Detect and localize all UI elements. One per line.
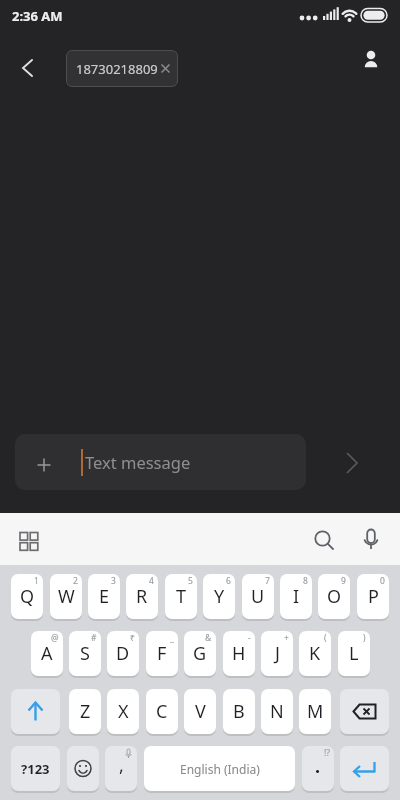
button[interactable]: W bbox=[50, 574, 82, 619]
button[interactable] bbox=[337, 448, 367, 478]
button[interactable]: , bbox=[105, 746, 137, 791]
button[interactable]: English (India) bbox=[144, 746, 295, 791]
button[interactable]: E bbox=[88, 574, 120, 619]
button[interactable]: A bbox=[31, 631, 63, 676]
staticText: # bbox=[91, 632, 97, 644]
button[interactable] bbox=[67, 746, 99, 791]
button[interactable] bbox=[356, 48, 386, 78]
staticText: M bbox=[307, 699, 324, 724]
button[interactable]: V bbox=[184, 689, 216, 734]
staticText: ( bbox=[324, 632, 327, 644]
button[interactable]: X bbox=[107, 689, 139, 734]
staticText: B bbox=[233, 699, 245, 724]
staticText: 0 bbox=[380, 575, 385, 587]
staticText: D bbox=[116, 641, 130, 666]
staticText: + bbox=[284, 632, 289, 644]
staticText: A bbox=[41, 641, 53, 666]
button[interactable]: Text message bbox=[15, 434, 306, 490]
staticText: 2:36 AM bbox=[12, 7, 63, 25]
button[interactable] bbox=[308, 526, 340, 556]
staticText: C bbox=[156, 699, 168, 724]
staticText: V bbox=[195, 699, 206, 724]
staticText: 9 bbox=[341, 575, 346, 587]
button[interactable]: C bbox=[146, 689, 178, 734]
button[interactable]: . bbox=[302, 746, 334, 791]
staticText: P bbox=[368, 584, 379, 609]
staticText: @ bbox=[51, 632, 59, 644]
staticText: Y bbox=[214, 584, 225, 609]
staticText: Text message bbox=[85, 451, 191, 473]
button[interactable]: B bbox=[223, 689, 255, 734]
button[interactable]: D bbox=[107, 631, 139, 676]
staticText: O bbox=[327, 584, 342, 609]
staticText: _ bbox=[170, 632, 174, 644]
button[interactable]: ?123 bbox=[11, 746, 60, 791]
button[interactable]: 18730218809 bbox=[66, 50, 178, 87]
staticText: 7 bbox=[265, 575, 270, 587]
staticText: N bbox=[270, 699, 284, 724]
staticText: T bbox=[176, 584, 187, 609]
button[interactable] bbox=[12, 531, 48, 559]
staticText: R bbox=[136, 584, 148, 609]
staticText: I bbox=[293, 584, 300, 609]
staticText: J bbox=[275, 641, 280, 666]
button[interactable]: Y bbox=[203, 574, 235, 619]
button[interactable]: H bbox=[223, 631, 255, 676]
staticText: & bbox=[205, 632, 212, 644]
staticText: 18730218809 bbox=[76, 60, 158, 78]
button[interactable] bbox=[11, 689, 60, 734]
staticText: 1 bbox=[34, 575, 39, 587]
button[interactable] bbox=[340, 689, 389, 734]
staticText: W bbox=[58, 584, 75, 609]
staticText: K bbox=[309, 641, 321, 666]
button[interactable]: U bbox=[242, 574, 274, 619]
staticText: Q bbox=[20, 584, 35, 609]
button[interactable] bbox=[355, 526, 387, 556]
staticText: ) bbox=[363, 632, 366, 644]
staticText: 8 bbox=[303, 575, 308, 587]
staticText: English (India) bbox=[180, 761, 260, 777]
button[interactable]: M bbox=[299, 689, 331, 734]
button[interactable]: J bbox=[261, 631, 293, 676]
staticText: 6 bbox=[226, 575, 231, 587]
button[interactable]: Z bbox=[69, 689, 101, 734]
staticText: ₹ bbox=[130, 632, 135, 644]
staticText: ?123 bbox=[21, 760, 50, 778]
staticText: H bbox=[232, 641, 246, 666]
staticText: 5 bbox=[188, 575, 193, 587]
button[interactable]: S bbox=[69, 631, 101, 676]
staticText: 3 bbox=[111, 575, 116, 587]
button[interactable]: F bbox=[146, 631, 178, 676]
staticText: . bbox=[315, 754, 321, 779]
staticText: 4 bbox=[149, 575, 154, 587]
staticText: - bbox=[248, 632, 251, 644]
staticText: E bbox=[99, 584, 110, 609]
staticText: L bbox=[349, 641, 359, 666]
button[interactable]: T bbox=[165, 574, 197, 619]
staticText: Z bbox=[80, 699, 91, 724]
staticText: F bbox=[157, 641, 167, 666]
button[interactable]: O bbox=[318, 574, 350, 619]
staticText: !? bbox=[324, 747, 330, 759]
staticText: X bbox=[118, 699, 129, 724]
button[interactable]: N bbox=[261, 689, 293, 734]
staticText: 2 bbox=[73, 575, 78, 587]
button[interactable]: I bbox=[280, 574, 312, 619]
button[interactable]: Q bbox=[11, 574, 43, 619]
button[interactable] bbox=[340, 746, 389, 791]
staticText: , bbox=[119, 753, 124, 778]
button[interactable]: P bbox=[357, 574, 389, 619]
button[interactable]: K bbox=[299, 631, 331, 676]
button[interactable]: L bbox=[338, 631, 370, 676]
staticText: U bbox=[251, 584, 265, 609]
button[interactable]: R bbox=[126, 574, 158, 619]
staticText: G bbox=[193, 641, 207, 666]
button[interactable]: G bbox=[184, 631, 216, 676]
staticText: S bbox=[80, 641, 90, 666]
